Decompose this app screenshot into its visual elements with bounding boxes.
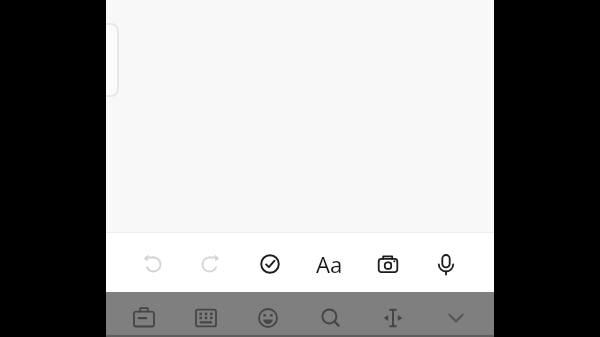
button[interactable]: [309, 296, 353, 337]
button[interactable]: [130, 242, 174, 286]
button[interactable]: [371, 296, 415, 337]
button[interactable]: [122, 296, 166, 337]
button[interactable]: [424, 243, 468, 287]
button[interactable]: Aa: [307, 242, 351, 286]
button[interactable]: [434, 296, 478, 337]
button[interactable]: [366, 243, 410, 287]
button[interactable]: [248, 242, 292, 286]
button[interactable]: [246, 296, 290, 337]
staticText: Aa: [316, 249, 343, 279]
button[interactable]: [184, 296, 228, 337]
button[interactable]: [189, 242, 233, 286]
